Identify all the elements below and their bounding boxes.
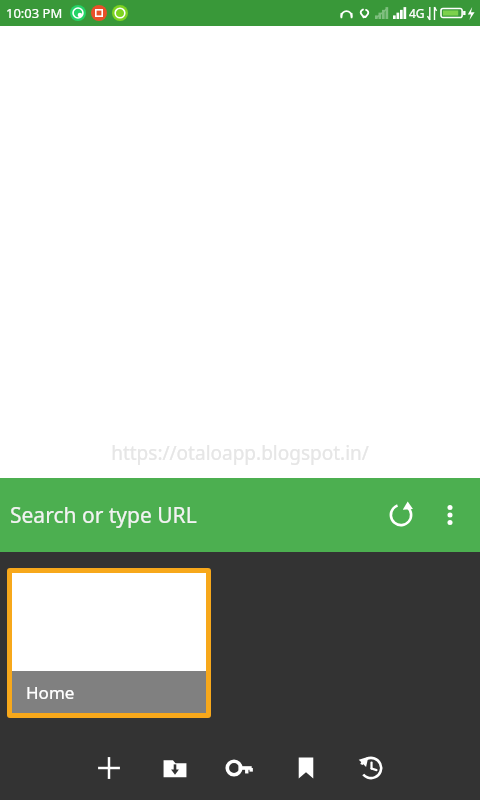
- button[interactable]: Downloads: [152, 745, 198, 791]
- button[interactable]: Reload: [376, 490, 426, 540]
- staticText: Home: [26, 681, 75, 704]
- staticText: https://otaloapp.blogspot.in/: [111, 440, 369, 466]
- button[interactable]: Bookmarks: [283, 745, 329, 791]
- button[interactable]: More options: [426, 491, 474, 539]
- button[interactable]: Search or type URL: [10, 501, 197, 530]
- button[interactable]: Passwords: [217, 745, 263, 791]
- button[interactable]: Home: [12, 573, 206, 713]
- staticText: Search or type URL: [10, 501, 197, 530]
- staticText: 10:03 PM: [6, 4, 63, 22]
- button[interactable]: History: [348, 745, 394, 791]
- button[interactable]: New tab: [86, 745, 132, 791]
- staticText: 4G: [409, 5, 425, 21]
